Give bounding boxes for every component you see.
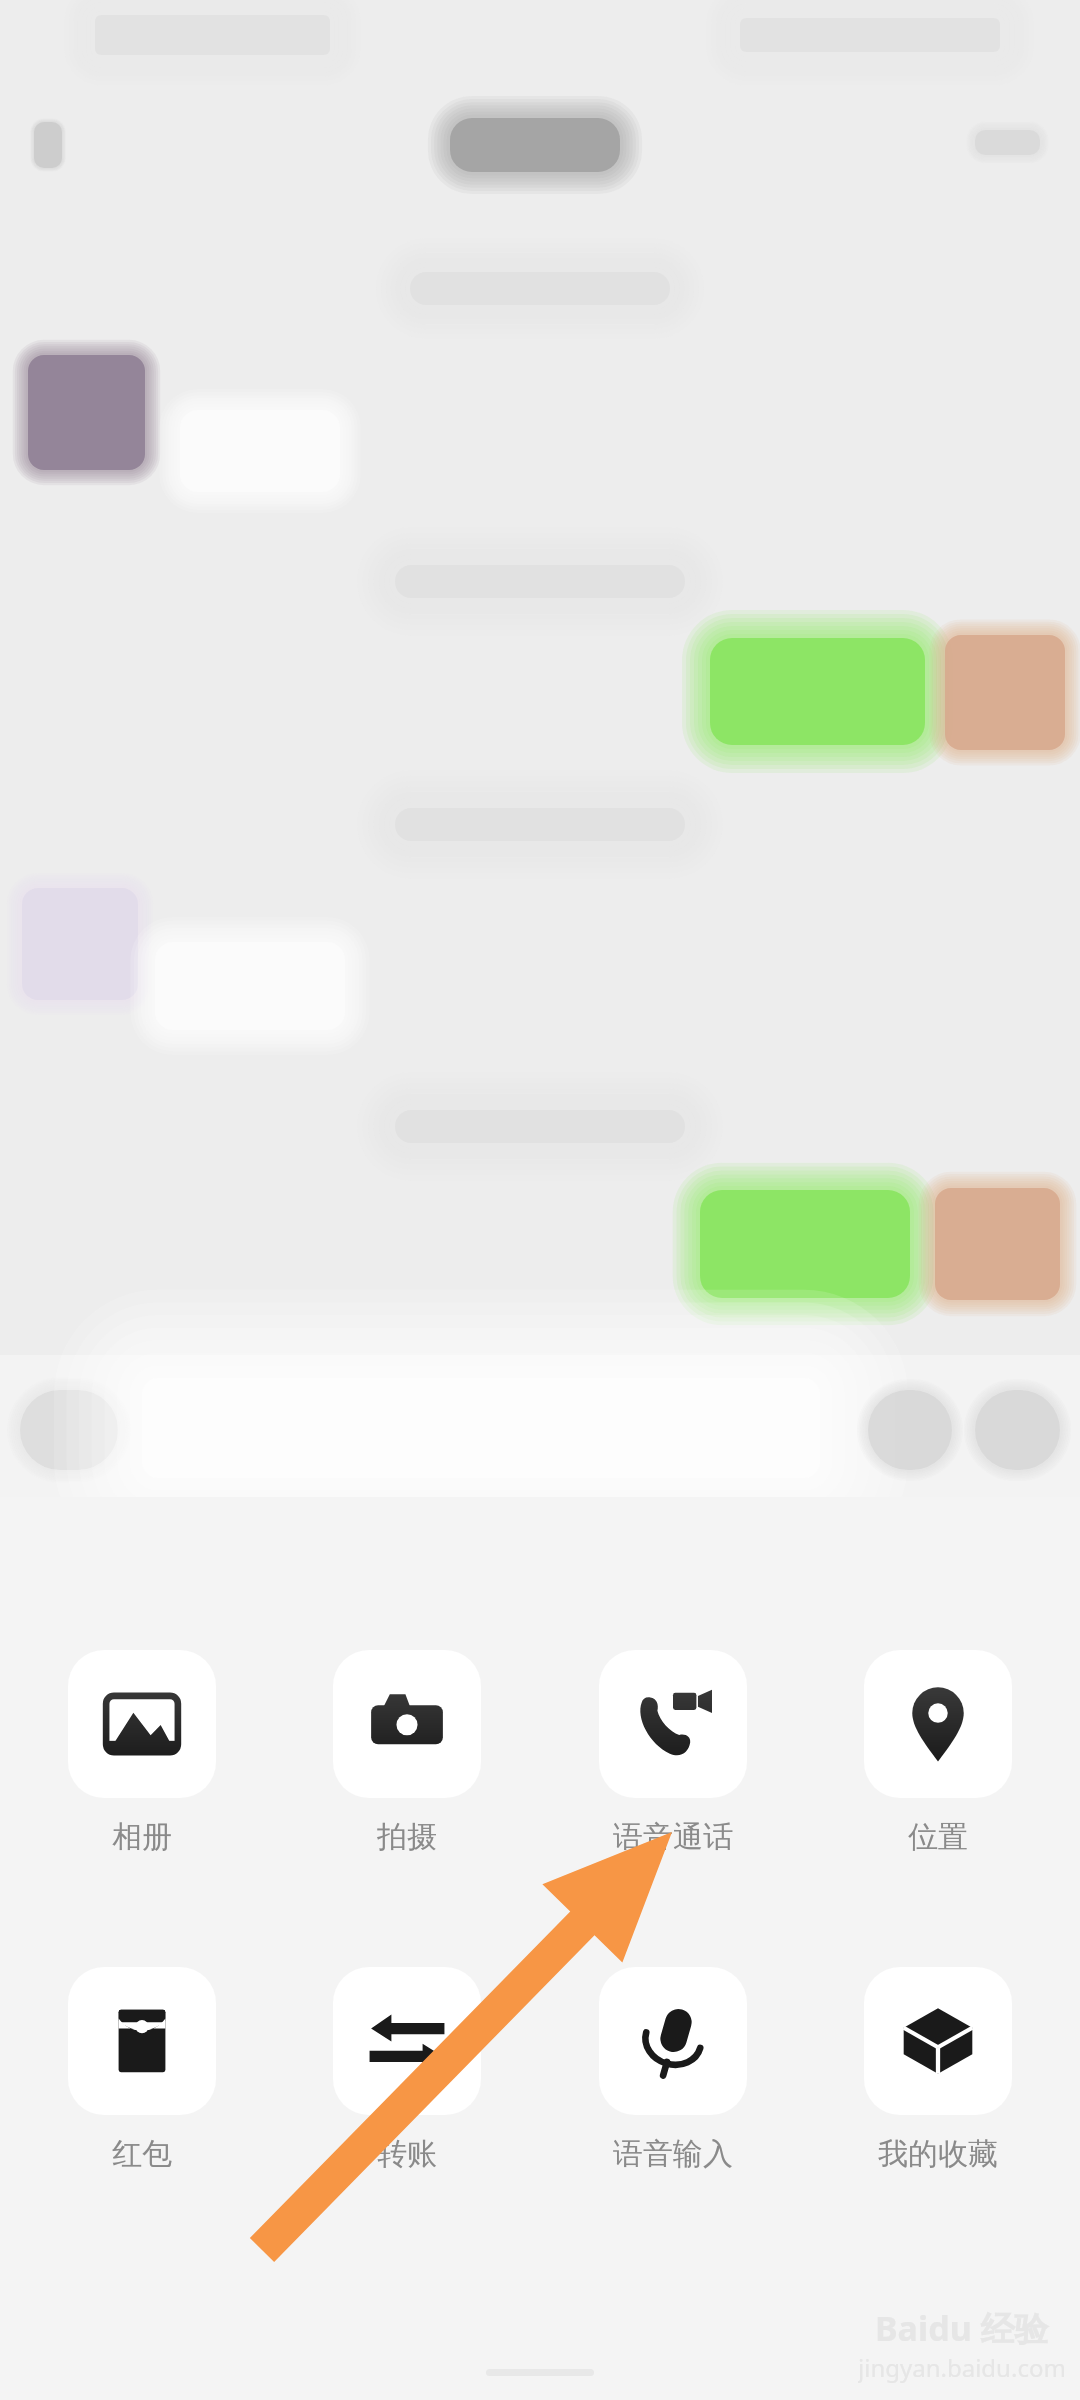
button[interactable]: 语音通话 — [587, 1650, 759, 1856]
staticText: 拍摄 — [377, 1818, 437, 1856]
button[interactable]: 我的收藏 — [852, 1967, 1024, 2173]
button[interactable]: 转账 — [321, 1967, 493, 2173]
staticText: 转账 — [377, 2135, 437, 2173]
button[interactable]: 位置 — [852, 1650, 1024, 1856]
button[interactable]: 拍摄 — [321, 1650, 493, 1856]
staticText: 红包 — [112, 2135, 172, 2173]
staticText: 我的收藏 — [878, 2135, 998, 2173]
staticText: 位置 — [908, 1818, 968, 1856]
button[interactable]: 相册 — [56, 1650, 228, 1856]
staticText: 相册 — [112, 1818, 172, 1856]
staticText: 语音输入 — [613, 2135, 733, 2173]
staticText: Baidu 经验 — [875, 2305, 1049, 2351]
button[interactable]: 语音输入 — [587, 1967, 759, 2173]
staticText: 语音通话 — [613, 1818, 733, 1856]
button[interactable]: 红包 — [56, 1967, 228, 2173]
staticText: jingyan.baidu.com — [858, 2351, 1066, 2384]
